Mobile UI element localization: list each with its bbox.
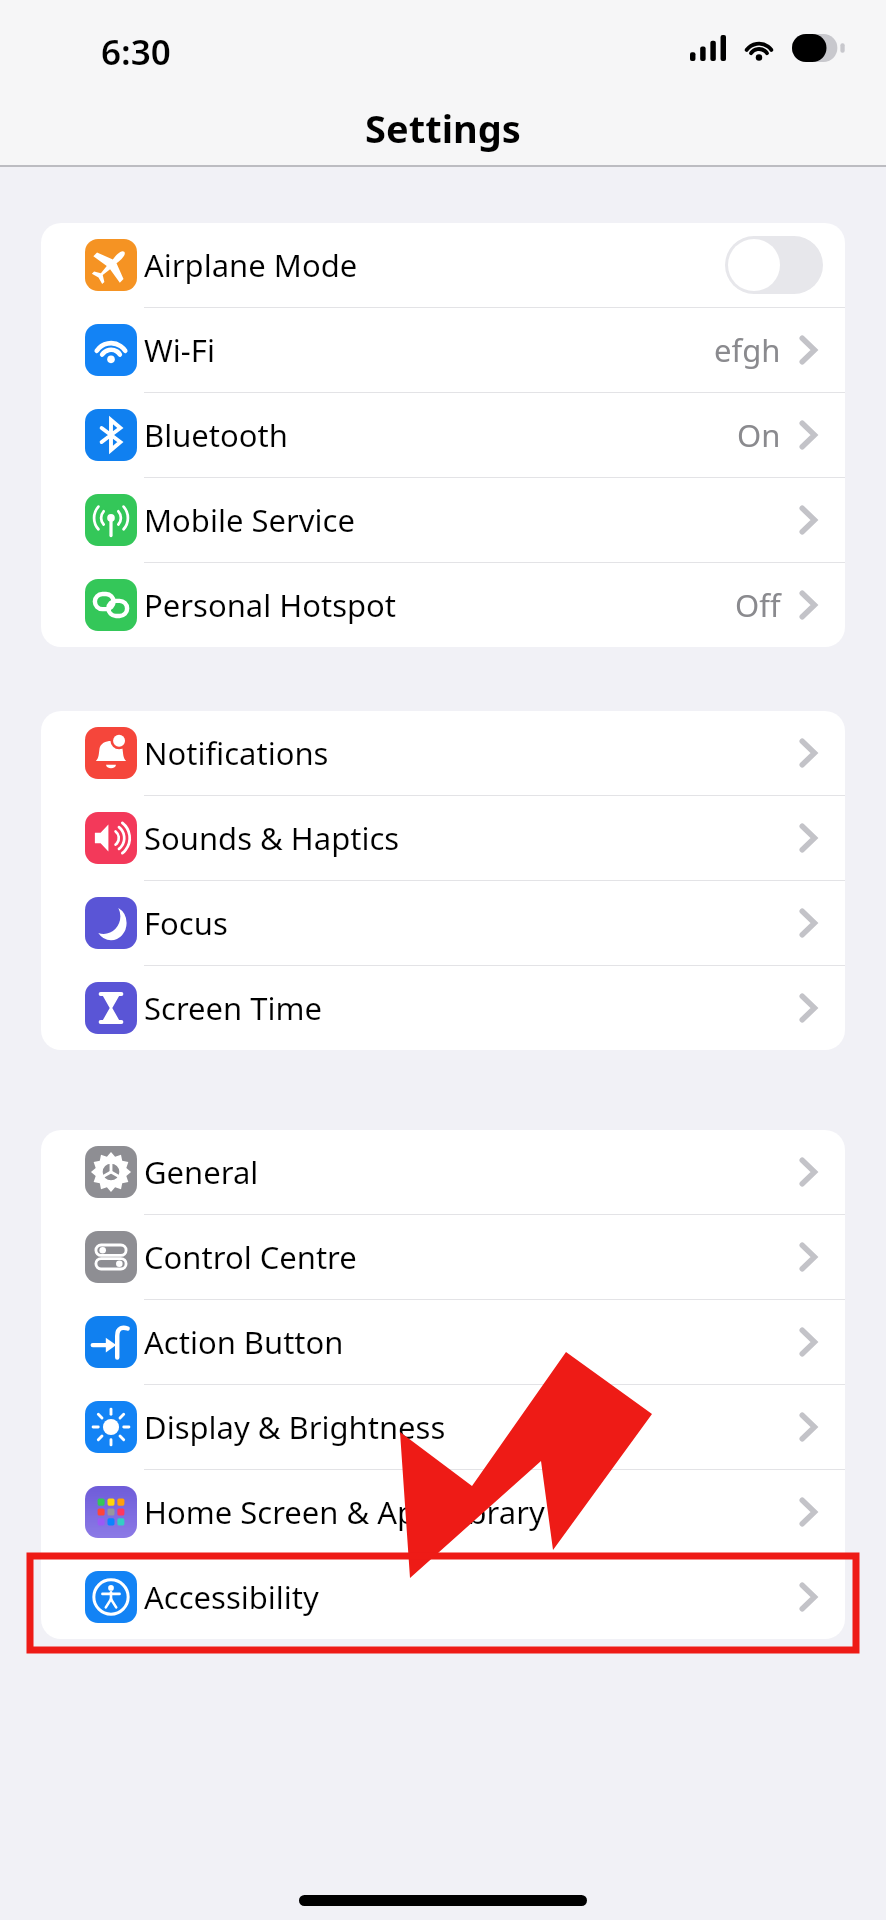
staticText: efgh: [714, 329, 781, 371]
button[interactable]: Control Centre: [41, 1215, 845, 1299]
staticText: Action Button: [144, 1321, 344, 1363]
staticText: Display & Brightness: [144, 1406, 446, 1448]
staticText: General: [144, 1151, 259, 1193]
button[interactable]: Personal Hotspot: [41, 563, 845, 647]
button[interactable]: Mobile Service: [41, 478, 845, 562]
staticText: Off: [735, 584, 781, 626]
staticText: Focus: [144, 902, 228, 944]
button[interactable]: Airplane Mode: [41, 223, 845, 307]
button[interactable]: Bluetooth: [41, 393, 845, 477]
button[interactable]: Screen Time: [41, 966, 845, 1050]
button[interactable]: Display & Brightness: [41, 1385, 845, 1469]
staticText: Home Screen & App Library: [144, 1491, 545, 1533]
staticText: Sounds & Haptics: [144, 817, 400, 859]
staticText: Bluetooth: [144, 414, 288, 456]
button[interactable]: General: [41, 1130, 845, 1214]
staticText: Settings: [365, 102, 521, 154]
button[interactable]: Notifications: [41, 711, 845, 795]
staticText: Control Centre: [144, 1236, 357, 1278]
button[interactable]: Sounds & Haptics: [41, 796, 845, 880]
button[interactable]: Focus: [41, 881, 845, 965]
button[interactable]: Wi-Fi: [41, 308, 845, 392]
staticText: Screen Time: [144, 987, 322, 1029]
staticText: Wi-Fi: [144, 329, 215, 371]
staticText: Notifications: [144, 732, 329, 774]
staticText: Mobile Service: [144, 499, 355, 541]
staticText: Accessibility: [144, 1576, 319, 1618]
button[interactable]: Home Screen & App Library: [41, 1470, 845, 1554]
staticText: 6:30: [101, 28, 171, 76]
staticText: On: [737, 414, 781, 456]
staticText: Personal Hotspot: [144, 584, 397, 626]
button[interactable]: Accessibility: [41, 1555, 845, 1639]
button[interactable]: Airplane Mode, off: [725, 236, 823, 294]
button[interactable]: Action Button: [41, 1300, 845, 1384]
staticText: Airplane Mode: [144, 244, 358, 286]
